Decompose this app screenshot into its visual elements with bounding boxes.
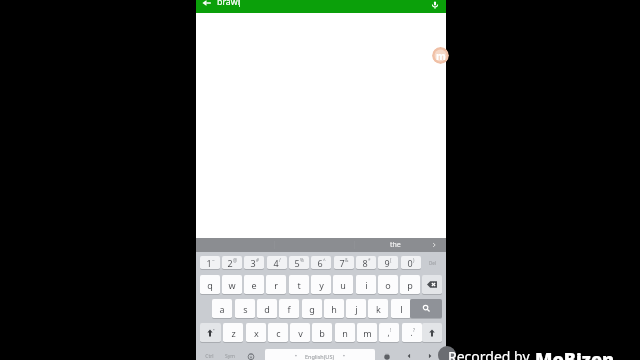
staticText: i	[365, 279, 368, 291]
button[interactable]: k	[368, 299, 388, 318]
button[interactable]: 0	[401, 256, 421, 269]
staticText: Ctrl	[205, 353, 214, 360]
button[interactable]: l	[391, 299, 411, 318]
staticText: &	[345, 257, 349, 263]
button[interactable]: r	[266, 275, 286, 294]
button[interactable]: s	[235, 299, 255, 318]
button[interactable]: Shift	[422, 323, 442, 342]
button[interactable]: x	[246, 323, 266, 342]
button[interactable]: 5	[289, 256, 309, 269]
button[interactable]: b	[312, 323, 332, 342]
staticText: 2	[227, 257, 233, 269]
staticText: b	[319, 327, 325, 339]
staticText: (	[390, 257, 392, 263]
button[interactable]: z	[223, 323, 243, 342]
staticText: p	[407, 279, 413, 291]
staticText: Del	[429, 260, 436, 266]
button[interactable]: a	[212, 299, 232, 318]
staticText: /	[279, 257, 281, 263]
staticText: .	[410, 327, 413, 338]
button[interactable]: q	[200, 275, 220, 294]
button[interactable]: Shift	[200, 323, 221, 342]
button[interactable]: 2	[222, 256, 242, 269]
staticText: ,	[387, 327, 390, 338]
button[interactable]: v	[290, 323, 310, 342]
button[interactable]: 8	[356, 256, 376, 269]
staticText: 9	[384, 257, 390, 269]
staticText: x	[254, 327, 259, 339]
button[interactable]: c	[268, 323, 288, 342]
staticText: n	[342, 327, 348, 339]
staticText: 3	[250, 257, 256, 269]
button[interactable]: Ctrl	[201, 349, 218, 360]
button[interactable]: p	[400, 275, 420, 294]
button[interactable]: 1	[200, 256, 220, 269]
button[interactable]: j	[346, 299, 366, 318]
button[interactable]: 4	[267, 256, 287, 269]
staticText: •	[343, 353, 345, 360]
button[interactable]: i	[356, 275, 376, 294]
staticText: 6	[317, 257, 323, 269]
staticText: o	[385, 279, 391, 291]
button[interactable]: Search	[410, 299, 442, 318]
staticText: d	[264, 303, 270, 315]
button[interactable]: m	[357, 323, 377, 342]
staticText: t	[297, 279, 301, 291]
staticText: k	[376, 303, 381, 315]
button[interactable]: Voice input	[379, 349, 395, 360]
staticText: )	[413, 257, 415, 263]
staticText: MoBizen	[535, 347, 615, 360]
staticText: m	[363, 327, 372, 339]
staticText: z	[231, 327, 236, 339]
staticText: v	[298, 327, 303, 339]
staticText: Recorded by	[448, 347, 530, 360]
staticText: 8	[362, 257, 368, 269]
button[interactable]: 9	[378, 256, 398, 269]
button[interactable]: t	[289, 275, 309, 294]
button[interactable]: e	[244, 275, 264, 294]
staticText: Sym	[225, 353, 235, 360]
button[interactable]: h	[324, 299, 344, 318]
staticText: @	[233, 257, 238, 263]
button[interactable]: the	[355, 238, 435, 252]
button[interactable]: f	[279, 299, 299, 318]
staticText: 1	[206, 257, 212, 269]
staticText: w	[228, 279, 236, 291]
button[interactable]: Account	[432, 47, 449, 64]
staticText: m	[436, 49, 446, 63]
staticText: 0	[407, 257, 413, 269]
button[interactable]: u	[333, 275, 353, 294]
button[interactable]: Space	[265, 349, 375, 360]
button[interactable]: Recorder	[438, 346, 456, 360]
staticText: j	[355, 303, 358, 315]
button[interactable]: Back	[200, 0, 214, 9]
button[interactable]: Symbols	[221, 349, 239, 360]
button[interactable]: n	[335, 323, 355, 342]
button[interactable]: 7	[334, 256, 354, 269]
button[interactable]: ,	[379, 323, 399, 342]
staticText: c	[276, 327, 281, 339]
button[interactable]: Backspace	[422, 275, 442, 294]
button[interactable]: g	[302, 299, 322, 318]
staticText: ~	[212, 257, 215, 263]
button[interactable]: o	[378, 275, 398, 294]
staticText: y	[319, 279, 324, 291]
staticText: 7	[339, 257, 345, 269]
staticText: 4	[273, 257, 279, 269]
button[interactable]: 3	[244, 256, 264, 269]
button[interactable]: w	[222, 275, 242, 294]
staticText: h	[331, 303, 337, 315]
button[interactable]: Next	[421, 349, 438, 360]
staticText: %	[300, 257, 304, 263]
staticText: ?	[413, 327, 415, 333]
button[interactable]: More suggestions	[424, 238, 444, 252]
button[interactable]: .	[402, 323, 422, 342]
button[interactable]: Previous	[400, 349, 417, 360]
button[interactable]: Delete	[422, 256, 442, 269]
button[interactable]: d	[257, 299, 277, 318]
button[interactable]: Emoji	[242, 349, 260, 360]
button[interactable]: 6	[311, 256, 331, 269]
button[interactable]: Voice search	[428, 0, 442, 11]
staticText: the	[390, 240, 401, 250]
button[interactable]: y	[311, 275, 331, 294]
